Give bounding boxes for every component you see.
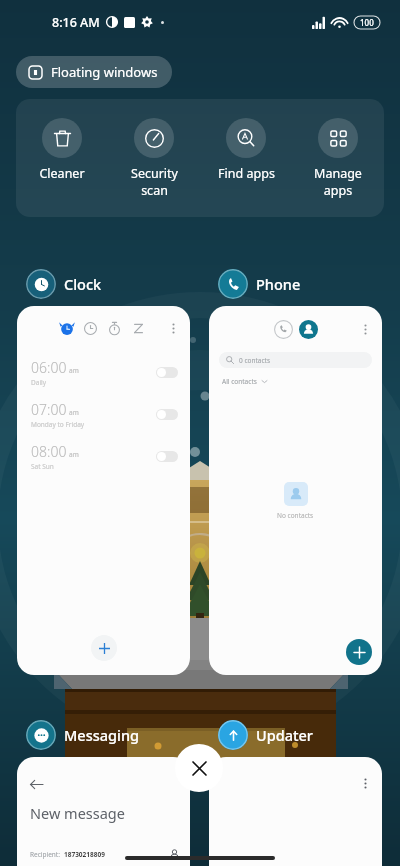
- button[interactable]: Phone: [218, 269, 301, 299]
- staticText: am: [69, 408, 79, 417]
- button[interactable]: 08:00: [31, 435, 178, 477]
- button[interactable]: Manage apps: [292, 118, 384, 198]
- button[interactable]: Updater: [218, 720, 313, 750]
- button[interactable]: 0 contacts: [219, 352, 372, 368]
- button[interactable]: Back: [17, 757, 190, 866]
- button[interactable]: [156, 367, 178, 378]
- staticText: 18730218809: [64, 850, 105, 859]
- button[interactable]: Add contact: [346, 639, 372, 665]
- staticText: Floating windows: [51, 63, 158, 81]
- other: More options: [360, 778, 371, 789]
- staticText: No contacts: [277, 511, 314, 520]
- staticText: am: [69, 450, 79, 459]
- button[interactable]: Close all: [175, 744, 223, 792]
- staticText: 8:16 AM: [52, 14, 100, 31]
- staticText: Recipient:: [30, 850, 60, 859]
- staticText: Clock: [64, 274, 102, 294]
- staticText: 06:00: [31, 358, 67, 377]
- button[interactable]: Find apps: [200, 118, 292, 182]
- staticText: 100: [360, 17, 374, 28]
- staticText: New message: [30, 803, 125, 823]
- staticText: Cleaner: [39, 165, 85, 182]
- button[interactable]: 0 contacts: [209, 306, 382, 675]
- button[interactable]: Messaging: [26, 720, 140, 750]
- staticText: All contacts: [222, 377, 257, 386]
- staticText: Phone: [256, 274, 301, 294]
- button[interactable]: [156, 451, 178, 462]
- button[interactable]: Cleaner: [16, 118, 108, 182]
- button[interactable]: 07:00: [31, 393, 178, 435]
- button[interactable]: Security scan: [108, 118, 200, 198]
- staticText: Daily: [31, 378, 47, 387]
- staticText: Find apps: [218, 165, 275, 182]
- staticText: 07:00: [31, 400, 67, 419]
- button[interactable]: Add alarm: [91, 635, 117, 661]
- staticText: 0 contacts: [239, 356, 271, 365]
- button[interactable]: Floating windows: [16, 56, 172, 88]
- staticText: Manage apps: [314, 165, 362, 198]
- button[interactable]: [156, 409, 178, 420]
- other: Pick contact: [169, 849, 180, 860]
- button[interactable]: Clock: [26, 269, 102, 299]
- other: Back: [30, 778, 43, 791]
- staticText: Updater: [256, 725, 313, 745]
- button[interactable]: More options: [209, 757, 382, 866]
- staticText: Monday to Friday: [31, 420, 85, 429]
- staticText: Sat Sun: [31, 462, 54, 471]
- staticText: am: [69, 366, 79, 375]
- staticText: Security scan: [131, 165, 178, 198]
- button[interactable]: 06:00: [17, 306, 190, 675]
- staticText: 08:00: [31, 442, 67, 461]
- button[interactable]: 06:00: [31, 351, 178, 393]
- staticText: Messaging: [64, 725, 140, 745]
